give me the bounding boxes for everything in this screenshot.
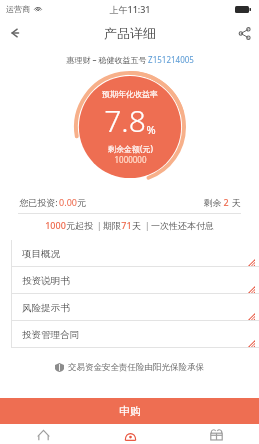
staticText: 71: [121, 219, 132, 231]
staticText: 运营商: [6, 4, 30, 14]
staticText: 剩余金额(元): [108, 143, 153, 154]
staticText: 1000000: [114, 154, 147, 165]
button[interactable]: Back: [0, 18, 30, 48]
staticText: 一次性还本付息: [151, 220, 214, 231]
staticText: 1000: [45, 219, 66, 231]
staticText: 预期年化收益率: [102, 89, 158, 99]
staticText: 投资说明书: [22, 275, 70, 287]
staticText: 期限: [103, 220, 121, 231]
button[interactable]: 项目概况: [0, 240, 259, 267]
staticText: 元起投: [66, 220, 93, 231]
button[interactable]: Share: [229, 18, 259, 48]
button[interactable]: 风险提示书: [0, 294, 259, 321]
staticText: 项目概况: [22, 248, 60, 260]
button[interactable]: 投资管理合同: [0, 321, 259, 348]
staticText: %: [146, 122, 156, 137]
staticText: 元: [77, 197, 86, 208]
staticText: 产品详细: [104, 25, 156, 41]
staticText: 0.00: [59, 196, 77, 208]
button[interactable]: 申购: [0, 398, 259, 424]
staticText: 风险提示书: [22, 302, 70, 314]
button[interactable]: Gifts: [173, 424, 259, 444]
staticText: 天: [132, 220, 141, 231]
staticText: 天: [229, 196, 241, 208]
button[interactable]: 投资说明书: [0, 267, 259, 294]
button[interactable]: Products: [87, 424, 173, 444]
staticText: 惠理财 – 稳健收益五号: [65, 54, 148, 65]
staticText: 申购: [119, 404, 141, 418]
staticText: |: [141, 219, 151, 231]
staticText: 剩余: [202, 196, 223, 208]
staticText: 投资管理合同: [22, 329, 79, 341]
staticText: 您已投资:: [18, 196, 59, 208]
staticText: Z151214005: [148, 54, 194, 65]
staticText: 交易资金安全责任险由阳光保险承保: [68, 362, 204, 373]
staticText: 2: [223, 196, 229, 208]
staticText: |: [93, 219, 103, 231]
staticText: 7.8: [104, 100, 146, 141]
staticText: 上午11:31: [109, 3, 151, 15]
button[interactable]: Home: [0, 424, 87, 444]
